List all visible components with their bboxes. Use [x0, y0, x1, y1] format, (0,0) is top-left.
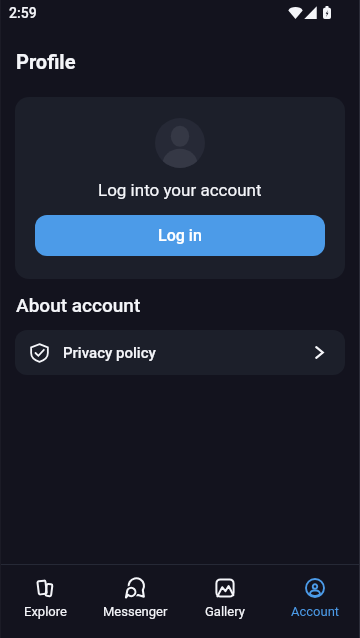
staticText: Gallery — [205, 604, 245, 619]
button[interactable]: Privacy policy — [15, 330, 345, 375]
staticText: 2:59 — [9, 5, 37, 21]
button[interactable]: Log in — [35, 215, 325, 256]
staticText: Log in — [158, 226, 202, 245]
staticText: Account — [291, 604, 340, 619]
staticText: Messenger — [103, 604, 168, 619]
button[interactable]: Explore — [0, 565, 90, 638]
staticText: Explore — [24, 604, 67, 619]
button[interactable]: Gallery — [180, 565, 270, 638]
staticText: Privacy policy — [63, 344, 156, 362]
staticText: About account — [16, 294, 141, 316]
staticText: Profile — [16, 50, 76, 73]
button[interactable]: Account — [270, 565, 360, 638]
staticText: Log into your account — [98, 180, 262, 200]
button[interactable]: Messenger — [90, 565, 180, 638]
